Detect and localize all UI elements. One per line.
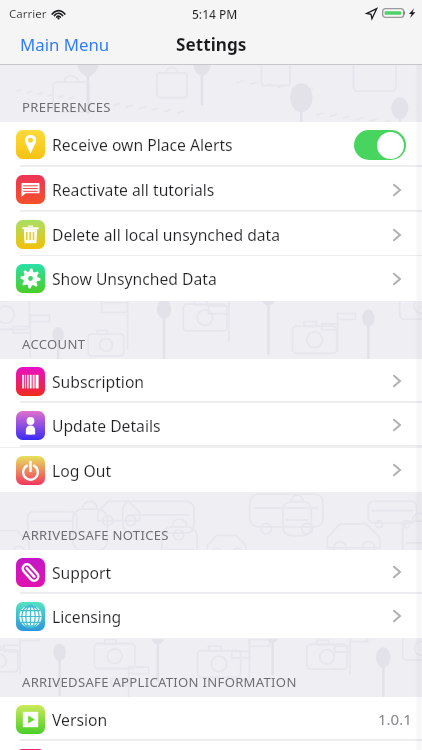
- staticText: Receive own Place Alerts: [52, 134, 233, 155]
- staticText: ARRIVEDSAFE NOTICES: [22, 526, 169, 544]
- staticText: Show Unsynched Data: [52, 268, 217, 289]
- button[interactable]: Main Menu: [0, 28, 124, 61]
- staticText: ARRIVEDSAFE APPLICATION INFORMATION: [22, 673, 297, 691]
- staticText: Delete all local unsynched data: [52, 224, 281, 245]
- staticText: Reactivate all tutorials: [52, 179, 215, 200]
- button[interactable]: Reactivate all tutorials: [0, 167, 422, 212]
- other: Open: [393, 610, 401, 622]
- button[interactable]: Show Unsynched Data: [0, 256, 422, 301]
- staticText: Licensing: [52, 606, 122, 627]
- button[interactable]: Licensing: [0, 594, 422, 638]
- staticText: PREFERENCES: [22, 98, 111, 116]
- staticText: 5:14 PM: [192, 6, 238, 22]
- other: Open: [393, 184, 401, 196]
- other: Open: [393, 419, 401, 431]
- staticText: Carrier: [9, 6, 47, 22]
- button[interactable]: Subscription: [0, 359, 422, 403]
- staticText: Log Out: [52, 460, 112, 481]
- button[interactable]: Delete all local unsynched data: [0, 212, 422, 257]
- button[interactable]: Receive own Place Alerts toggle: [354, 130, 406, 160]
- other: Open: [393, 273, 401, 285]
- other: Open: [393, 566, 401, 578]
- staticText: Version: [52, 709, 108, 730]
- other: Open: [393, 229, 401, 241]
- staticText: Update Details: [52, 415, 161, 436]
- other: Open: [393, 464, 401, 476]
- staticText: ACCOUNT: [22, 335, 86, 353]
- staticText: Subscription: [52, 371, 145, 392]
- button[interactable]: Version: [0, 697, 422, 741]
- staticText: 1.0.1: [378, 709, 412, 729]
- button[interactable]: Update Details: [0, 403, 422, 447]
- button[interactable]: Log Out: [0, 448, 422, 492]
- staticText: Settings: [176, 33, 247, 56]
- staticText: Support: [52, 562, 112, 583]
- button[interactable]: Support: [0, 550, 422, 594]
- button[interactable]: Build: [0, 741, 422, 750]
- button[interactable]: Receive own Place Alerts: [0, 122, 422, 167]
- staticText: Main Menu: [20, 33, 110, 56]
- other: Open: [393, 375, 401, 387]
